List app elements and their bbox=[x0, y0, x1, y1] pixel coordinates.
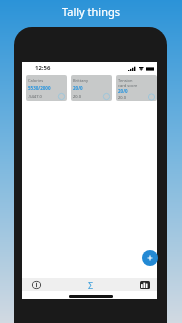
staticText: 20/0 bbox=[73, 85, 83, 91]
button[interactable]: Totals bbox=[73, 278, 103, 291]
staticText: Tally things bbox=[62, 4, 120, 19]
staticText: 5530/2000 bbox=[28, 85, 51, 91]
button[interactable]: Reports bbox=[127, 278, 157, 291]
button[interactable]: Add bbox=[142, 250, 158, 266]
staticText: 12:56 bbox=[35, 64, 51, 72]
button[interactable]: Calories bbox=[26, 75, 67, 101]
staticText: Calories bbox=[28, 78, 44, 83]
button[interactable]: Accounts bbox=[22, 278, 50, 291]
button[interactable]: Tension card score bbox=[116, 75, 157, 101]
staticText: 20.0 bbox=[118, 95, 126, 100]
staticText: Σ bbox=[88, 279, 94, 291]
staticText: 20.0 bbox=[73, 94, 81, 99]
staticText: -5447.0 bbox=[28, 94, 42, 99]
staticText: Brittany bbox=[73, 78, 88, 83]
staticText: 20/0 bbox=[118, 88, 128, 94]
staticText: Tension card score bbox=[118, 78, 138, 88]
button[interactable]: Brittany bbox=[71, 75, 112, 101]
